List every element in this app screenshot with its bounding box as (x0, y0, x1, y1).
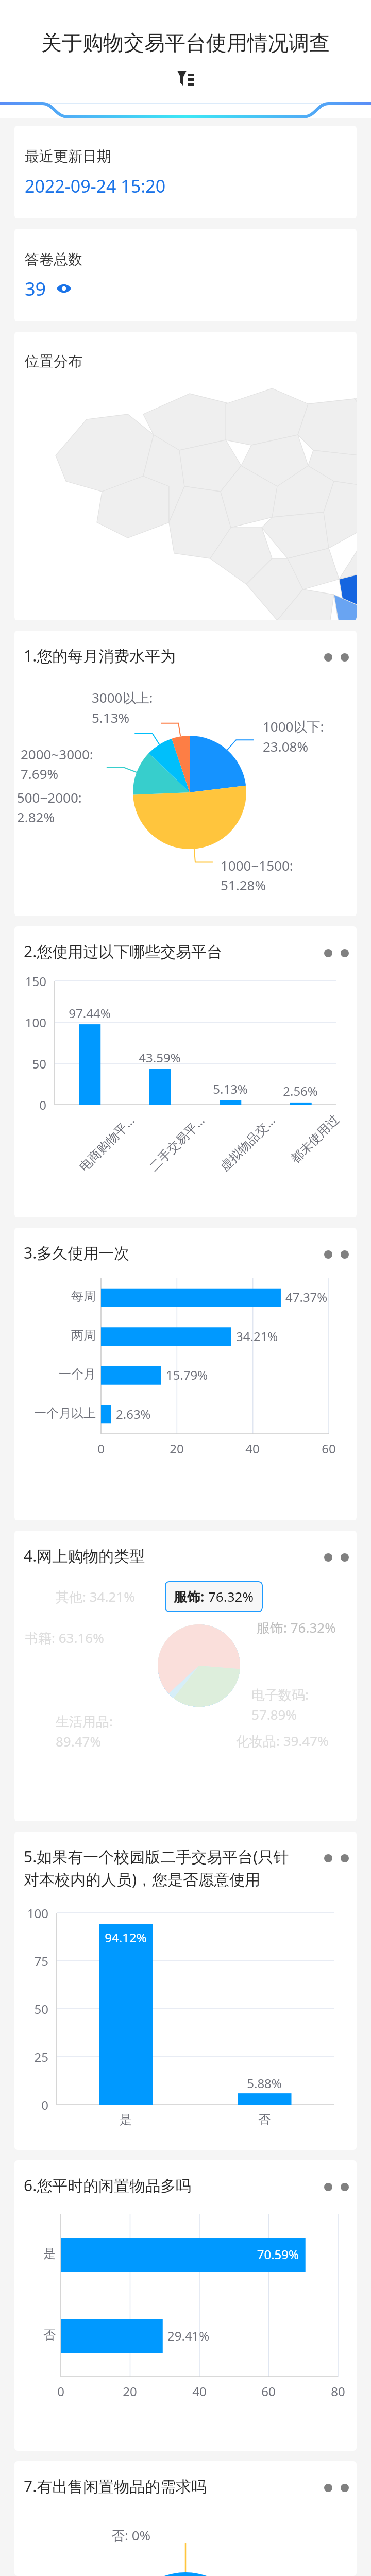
staticText: 生活用品: 89.47% (56, 1712, 113, 1750)
staticText: 其他: 34.21% (56, 1587, 135, 1606)
staticText: 76.32% (208, 1587, 254, 1605)
staticText: 1.您的每月消费水平为 (24, 645, 312, 666)
button[interactable]: More options (319, 1243, 350, 1266)
staticText: 一个月 (14, 1366, 96, 1382)
staticText: 关于购物交易平台使用情况调查 (41, 30, 330, 56)
staticText: 100 (14, 1014, 46, 1031)
staticText: 0 (30, 2383, 92, 2400)
staticText: 电子数码: 57.89% (251, 1685, 309, 1723)
staticText: 书籍: 63.16% (25, 1629, 104, 1647)
staticText: 7.有出售闲置物品的需求吗 (24, 2476, 312, 2497)
staticText: 40 (168, 2383, 230, 2400)
staticText: 1000以下: 23.08% (263, 717, 324, 755)
staticText: 97.44% (59, 1005, 121, 1022)
staticText: 6.您平时的闲置物品多吗 (24, 2175, 312, 2196)
staticText: 2000~3000: 7.69% (21, 745, 93, 783)
staticText: 最近更新日期 (25, 147, 111, 165)
staticText: 2022-09-24 15:20 (25, 174, 166, 198)
staticText: 34.21% (236, 1328, 318, 1345)
staticText: 43.59% (129, 1049, 191, 1066)
staticText: 40 (222, 1440, 283, 1457)
staticText: 2.您使用过以下哪些交易平台 (24, 941, 312, 962)
staticText: 5.88% (228, 2075, 300, 2092)
staticText: 5.如果有一个校园版二手交易平台(只针 对本校内的人员)，您是否愿意使用 (24, 1846, 312, 1890)
staticText: 4.网上购物的类型 (24, 1545, 312, 1566)
staticText: 是 (90, 2112, 162, 2127)
staticText: 0 (70, 1440, 132, 1457)
staticText: 150 (14, 973, 46, 990)
staticText: 每周 (14, 1289, 96, 1304)
staticText: 服饰: (174, 1587, 208, 1606)
staticText: 70.59% (243, 2246, 299, 2263)
staticText: 二手交易平… (145, 1112, 208, 1174)
staticText: 虚拟物品交… (216, 1112, 278, 1174)
button[interactable]: More options (319, 1847, 350, 1870)
staticText: 否 (14, 2327, 56, 2343)
staticText: 20 (99, 2383, 161, 2400)
staticText: 服饰: 76.32% (257, 1618, 336, 1637)
button[interactable]: More options (319, 2477, 350, 2499)
button[interactable]: More options (319, 646, 350, 669)
staticText: 25 (14, 2048, 48, 2065)
staticText: 5.13% (199, 1080, 261, 1097)
staticText: 0 (14, 2096, 48, 2113)
staticText: 化妆品: 39.47% (236, 1732, 329, 1750)
staticText: 29.41% (167, 2327, 250, 2344)
staticText: 80 (307, 2383, 357, 2400)
staticText: 一个月以上 (14, 1405, 96, 1421)
staticText: 50 (14, 1055, 46, 1072)
staticText: 2.63% (116, 1405, 198, 1422)
staticText: 位置分布 (25, 352, 82, 370)
staticText: 1500~2000: 12.82% (14, 788, 82, 826)
staticText: 75 (14, 1953, 48, 1970)
staticText: 两周 (14, 1328, 96, 1343)
staticText: 50 (14, 2001, 48, 2018)
staticText: 94.12% (90, 1929, 162, 1946)
button[interactable]: More options (319, 2176, 350, 2198)
staticText: 100 (14, 1905, 48, 1922)
staticText: 39 (25, 276, 46, 301)
staticText: 1000~1500: 51.28% (221, 856, 293, 894)
staticText: 3000以上: 5.13% (92, 688, 153, 726)
button[interactable]: Filter (175, 68, 196, 89)
button[interactable]: More options (319, 942, 350, 964)
button[interactable]: More options (319, 1546, 350, 1569)
staticText: 47.37% (285, 1289, 357, 1306)
staticText: 是 (14, 2246, 56, 2261)
staticText: 20 (146, 1440, 208, 1457)
staticText: 15.79% (166, 1366, 248, 1383)
staticText: 60 (238, 2383, 299, 2400)
staticText: 都未使用过 (288, 1112, 342, 1166)
staticText: 0 (14, 1096, 46, 1113)
staticText: 电商购物平… (75, 1112, 138, 1174)
staticText: 2.56% (269, 1082, 331, 1099)
staticText: 否: 0% (111, 2526, 151, 2545)
staticText: 否 (228, 2112, 300, 2127)
staticText: 3.多久使用一次 (24, 1242, 312, 1263)
staticText: 60 (298, 1440, 357, 1457)
staticText: 答卷总数 (25, 250, 82, 268)
